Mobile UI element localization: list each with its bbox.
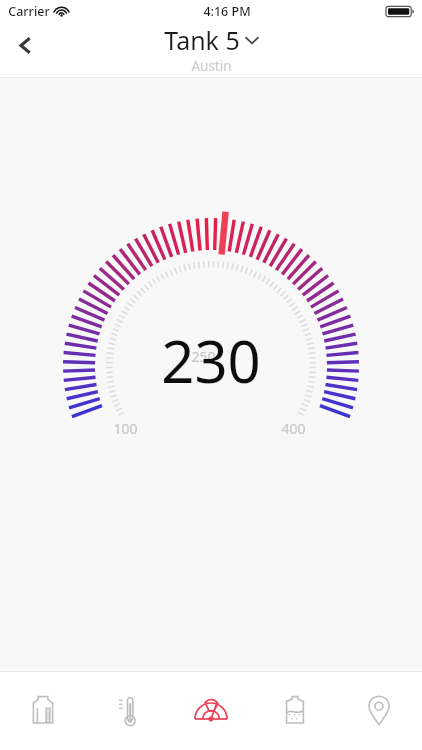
staticText: Tank 5	[164, 23, 240, 57]
button[interactable]: Location	[338, 672, 420, 750]
staticText: Carrier	[8, 3, 50, 20]
button[interactable]: Level	[254, 672, 336, 750]
staticText: Austin	[191, 57, 232, 75]
staticText: 4:16 PM	[203, 3, 251, 20]
button[interactable]: Temperature	[86, 672, 168, 750]
staticText: 100	[113, 419, 138, 438]
staticText: 250	[191, 347, 216, 366]
staticText: 230	[161, 321, 261, 400]
button[interactable]: Tank	[2, 672, 84, 750]
button[interactable]: Tank 5	[164, 23, 258, 75]
button[interactable]: Gauge	[170, 672, 252, 750]
staticText: 400	[281, 419, 306, 438]
button[interactable]: Back	[2, 22, 48, 68]
